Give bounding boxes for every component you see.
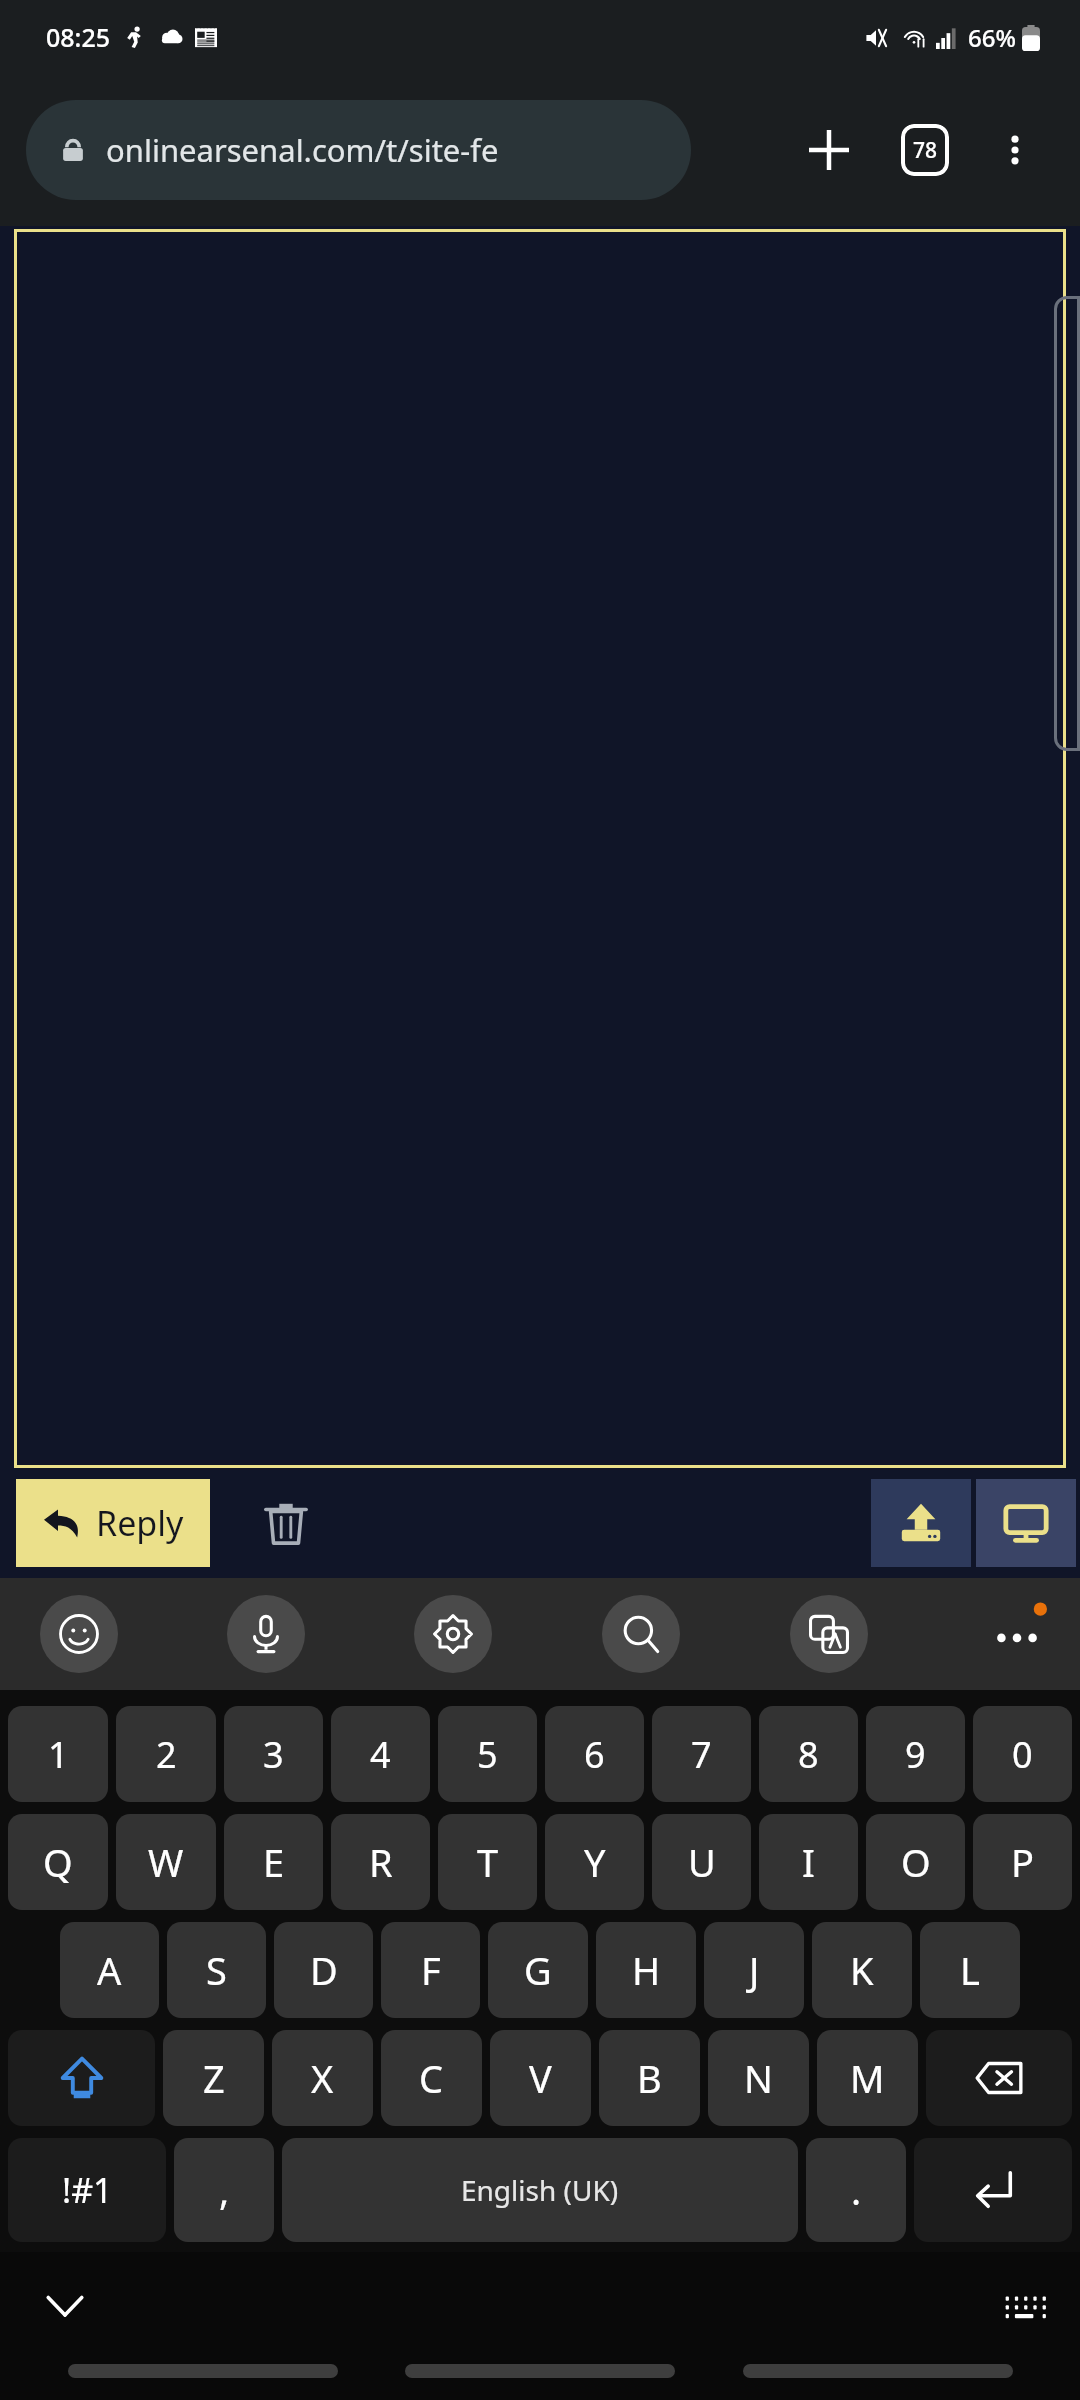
button[interactable]: New tab	[786, 107, 872, 193]
staticText: Y	[584, 1836, 606, 1888]
staticText: N	[744, 2052, 773, 2104]
button[interactable]: Change keyboard	[996, 2278, 1054, 2336]
button[interactable]: Q	[8, 1814, 108, 1910]
button[interactable]: Y	[545, 1814, 644, 1910]
staticText: 9	[905, 1730, 926, 1779]
button[interactable]: More options	[972, 107, 1058, 193]
button[interactable]: 2	[116, 1706, 216, 1802]
button[interactable]: C	[381, 2030, 482, 2126]
staticText: S	[206, 1944, 227, 1996]
staticText: K	[850, 1944, 874, 1996]
button[interactable]: G	[488, 1922, 588, 2018]
staticText: 2	[156, 1730, 177, 1779]
button[interactable]: S	[167, 1922, 266, 2018]
staticText: 1	[48, 1730, 69, 1779]
staticText: V	[529, 2052, 552, 2104]
button[interactable]: 9	[866, 1706, 965, 1802]
staticText: D	[310, 1944, 338, 1996]
button[interactable]: Emoji	[40, 1595, 118, 1673]
staticText: O	[901, 1836, 931, 1888]
staticText: I	[802, 1836, 815, 1888]
staticText: H	[632, 1944, 661, 1996]
button[interactable]: Shift	[8, 2030, 155, 2126]
button[interactable]: Enter	[914, 2138, 1072, 2242]
staticText: 7	[691, 1730, 712, 1779]
button[interactable]: M	[817, 2030, 918, 2126]
button[interactable]: I	[759, 1814, 858, 1910]
button[interactable]: D	[274, 1922, 373, 2018]
button[interactable]: P	[973, 1814, 1072, 1910]
button[interactable]: 3	[224, 1706, 323, 1802]
staticText: Z	[203, 2052, 225, 2104]
staticText: 78	[913, 136, 938, 165]
button[interactable]: B	[599, 2030, 700, 2126]
staticText: G	[524, 1944, 552, 1996]
staticText: B	[637, 2052, 662, 2104]
button[interactable]: !#1	[8, 2138, 166, 2242]
staticText: Q	[43, 1836, 73, 1888]
button[interactable]: 7	[652, 1706, 751, 1802]
staticText: English (UK)	[461, 2171, 619, 2209]
button[interactable]: Navigation	[405, 2364, 675, 2378]
button[interactable]: Hide keyboard	[34, 2274, 96, 2336]
button[interactable]: Navigation	[68, 2364, 338, 2378]
button[interactable]: X	[272, 2030, 373, 2126]
staticText: Reply	[96, 1500, 184, 1546]
staticText: C	[419, 2052, 444, 2104]
staticText: U	[688, 1836, 716, 1888]
button[interactable]: U	[652, 1814, 751, 1910]
staticText: M	[850, 2052, 885, 2104]
button[interactable]: W	[116, 1814, 216, 1910]
button[interactable]: Translate	[790, 1595, 868, 1673]
button[interactable]: T	[438, 1814, 537, 1910]
staticText: F	[421, 1944, 441, 1996]
staticText: 66%	[968, 21, 1016, 54]
staticText: 6	[584, 1730, 605, 1779]
button[interactable]: H	[596, 1922, 696, 2018]
button[interactable]: Z	[163, 2030, 264, 2126]
button[interactable]: More keyboard options	[978, 1595, 1056, 1673]
staticText: ,	[219, 2164, 230, 2216]
button[interactable]: Search	[602, 1595, 680, 1673]
staticText: 08:25	[46, 20, 111, 54]
button[interactable]: 5	[438, 1706, 537, 1802]
button[interactable]: V	[490, 2030, 591, 2126]
staticText: W	[148, 1836, 184, 1888]
staticText: L	[960, 1944, 980, 1996]
button[interactable]: 6	[545, 1706, 644, 1802]
staticText: T	[477, 1836, 499, 1888]
button[interactable]: O	[866, 1814, 965, 1910]
staticText: A	[97, 1944, 122, 1996]
staticText: .	[851, 2164, 862, 2216]
button[interactable]: 0	[973, 1706, 1072, 1802]
button[interactable]: N	[708, 2030, 809, 2126]
staticText: 8	[798, 1730, 819, 1779]
button[interactable]: Upload	[871, 1479, 971, 1567]
button[interactable]: K	[812, 1922, 912, 2018]
button[interactable]: Delete	[246, 1483, 326, 1563]
staticText: J	[749, 1944, 760, 1996]
button[interactable]: 1	[8, 1706, 108, 1802]
staticText: !#1	[62, 2167, 113, 2213]
button[interactable]: A	[60, 1922, 159, 2018]
button[interactable]: Voice input	[227, 1595, 305, 1673]
button[interactable]: F	[381, 1922, 480, 2018]
staticText: 4	[370, 1730, 391, 1779]
button[interactable]: .	[806, 2138, 906, 2242]
button[interactable]: onlinearsenal.com/t/site-fe	[26, 100, 691, 200]
button[interactable]: ,	[174, 2138, 274, 2242]
button[interactable]: Reply	[16, 1479, 210, 1567]
button[interactable]: Backspace	[926, 2030, 1072, 2126]
button[interactable]: 8	[759, 1706, 858, 1802]
button[interactable]: J	[704, 1922, 804, 2018]
button[interactable]: English (UK)	[282, 2138, 798, 2242]
button[interactable]: L	[920, 1922, 1020, 2018]
button[interactable]: E	[224, 1814, 323, 1910]
staticText: onlinearsenal.com/t/site-fe	[106, 129, 499, 171]
button[interactable]: R	[331, 1814, 430, 1910]
button[interactable]: Navigation	[743, 2364, 1013, 2378]
button[interactable]: Settings	[414, 1595, 492, 1673]
button[interactable]: 4	[331, 1706, 430, 1802]
button[interactable]: Tabs	[882, 107, 968, 193]
button[interactable]: Desktop site	[976, 1479, 1076, 1567]
